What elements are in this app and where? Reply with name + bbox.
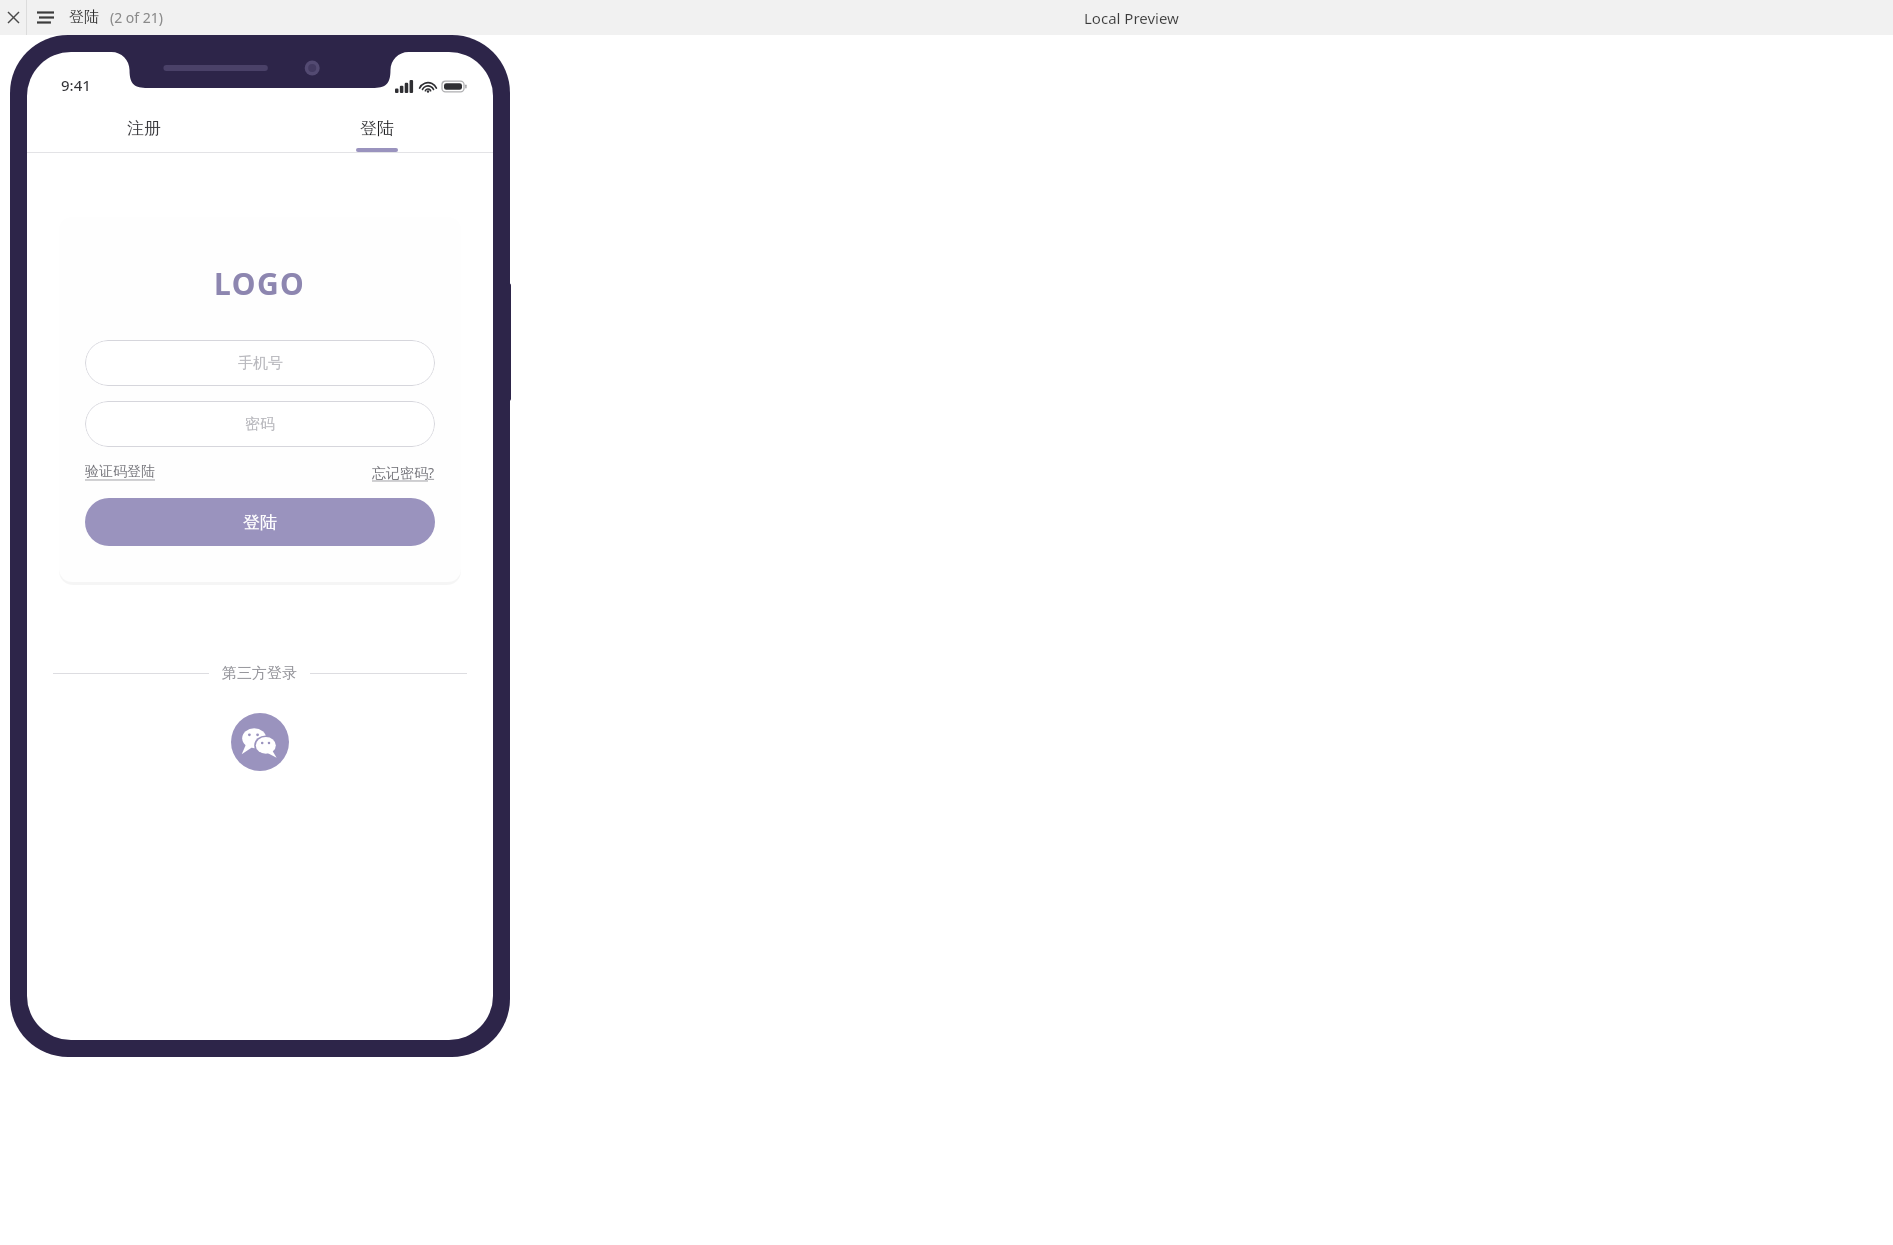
- staticText: 密码: [245, 415, 275, 434]
- staticText: (2 of 21): [110, 8, 163, 27]
- staticText: 第三方登录: [222, 664, 297, 683]
- button[interactable]: 注册: [27, 104, 260, 152]
- staticText: 验证码登陆: [85, 463, 155, 481]
- button[interactable]: Menu: [27, 0, 63, 35]
- staticText: Local Preview: [1084, 8, 1179, 28]
- staticText: 忘记密码?: [372, 463, 435, 482]
- staticText: 登陆: [69, 8, 99, 27]
- staticText: 注册: [127, 118, 161, 139]
- staticText: LOGO: [214, 263, 306, 304]
- button[interactable]: 登陆: [85, 498, 435, 546]
- button[interactable]: 密码: [85, 401, 435, 447]
- staticText: 登陆: [243, 512, 277, 533]
- staticText: 登陆: [360, 118, 394, 139]
- button[interactable]: 手机号: [85, 340, 435, 386]
- button[interactable]: 验证码登陆: [85, 463, 155, 481]
- button[interactable]: 登陆: [260, 104, 493, 152]
- staticText: 9:41: [61, 75, 91, 95]
- button[interactable]: WeChat login: [231, 713, 289, 771]
- button[interactable]: 忘记密码?: [372, 463, 435, 482]
- staticText: 手机号: [238, 354, 283, 373]
- button[interactable]: Close: [0, 0, 26, 35]
